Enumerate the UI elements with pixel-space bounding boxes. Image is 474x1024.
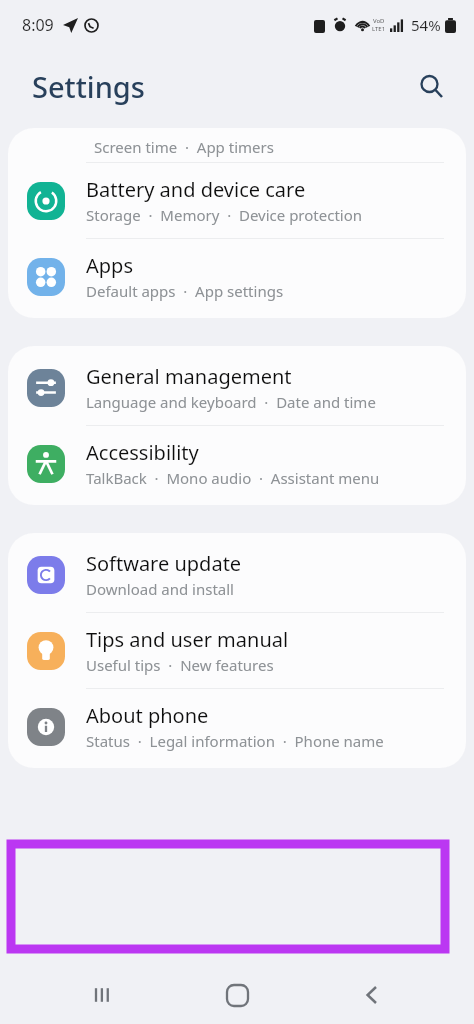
staticText: LTE1 bbox=[372, 25, 386, 33]
staticText: Screen time · App timers bbox=[94, 137, 274, 157]
staticText: Software update bbox=[86, 550, 242, 577]
staticText: General management bbox=[86, 363, 292, 390]
button[interactable]: Recent apps bbox=[69, 966, 135, 1024]
button[interactable]: Screen time · App timers bbox=[8, 132, 466, 162]
staticText: Useful tips · New features bbox=[86, 655, 274, 675]
staticText: Language and keyboard · Date and time bbox=[86, 392, 376, 412]
button[interactable]: Tips and user manual bbox=[8, 613, 466, 688]
staticText: Apps bbox=[86, 252, 133, 279]
staticText: TalkBack · Mono audio · Assistant menu bbox=[86, 468, 380, 488]
staticText: Default apps · App settings bbox=[86, 281, 284, 301]
staticText: 8:09 bbox=[22, 14, 54, 36]
button[interactable]: Search bbox=[410, 65, 452, 107]
button[interactable]: General management bbox=[8, 350, 466, 425]
staticText: Tips and user manual bbox=[86, 626, 289, 653]
button[interactable]: About phone bbox=[8, 689, 466, 764]
staticText: 54% bbox=[411, 15, 441, 35]
button[interactable]: Accessibility bbox=[8, 426, 466, 501]
staticText: Accessibility bbox=[86, 439, 199, 466]
button[interactable]: Battery and device care bbox=[8, 163, 466, 238]
staticText: About phone bbox=[86, 702, 209, 729]
button[interactable]: Apps bbox=[8, 239, 466, 314]
staticText: Settings bbox=[32, 67, 145, 106]
staticText: Storage · Memory · Device protection bbox=[86, 205, 363, 225]
staticText: Download and install bbox=[86, 579, 234, 599]
button[interactable]: Home bbox=[204, 966, 270, 1024]
staticText: VoD bbox=[373, 17, 385, 25]
button[interactable]: Software update bbox=[8, 537, 466, 612]
button[interactable]: Back bbox=[339, 966, 405, 1024]
staticText: Battery and device care bbox=[86, 176, 306, 203]
staticText: Status · Legal information · Phone name bbox=[86, 731, 384, 751]
